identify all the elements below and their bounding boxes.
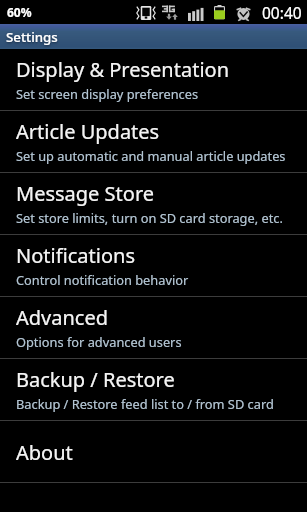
button[interactable]: Advanced xyxy=(0,297,307,359)
staticText: Article Updates xyxy=(16,118,160,145)
other: 3G data connected xyxy=(162,4,178,22)
button[interactable]: Display & Presentation xyxy=(0,49,307,111)
other: Battery 60 percent xyxy=(214,4,225,22)
staticText: Options for advanced users xyxy=(16,333,182,350)
staticText: Set store limits, turn on SD card storag… xyxy=(16,209,283,226)
button[interactable]: Settings xyxy=(0,24,307,49)
button[interactable]: Message Store xyxy=(0,173,307,235)
button[interactable]: Backup / Restore xyxy=(0,359,307,421)
staticText: Set screen display preferences xyxy=(16,85,199,102)
staticText: Control notification behavior xyxy=(16,271,189,288)
staticText: Backup / Restore feed list to / from SD … xyxy=(16,395,274,412)
staticText: Display & Presentation xyxy=(16,56,229,83)
staticText: Notifications xyxy=(16,242,135,269)
staticText: Settings xyxy=(6,28,58,46)
staticText: Advanced xyxy=(16,304,108,331)
button[interactable]: Article Updates xyxy=(0,111,307,173)
staticText: About xyxy=(16,439,73,466)
staticText: 00:40 xyxy=(262,2,302,23)
staticText: 60% xyxy=(7,4,32,20)
staticText: Message Store xyxy=(16,180,155,207)
staticText: Set up automatic and manual article upda… xyxy=(16,147,286,164)
button[interactable]: About xyxy=(0,421,307,483)
other: Ringer set to vibrate xyxy=(135,4,157,22)
other: Alarm set xyxy=(236,4,251,22)
button[interactable]: Notifications xyxy=(0,235,307,297)
staticText: Backup / Restore xyxy=(16,366,175,393)
other: Signal strength four bars xyxy=(188,4,203,22)
